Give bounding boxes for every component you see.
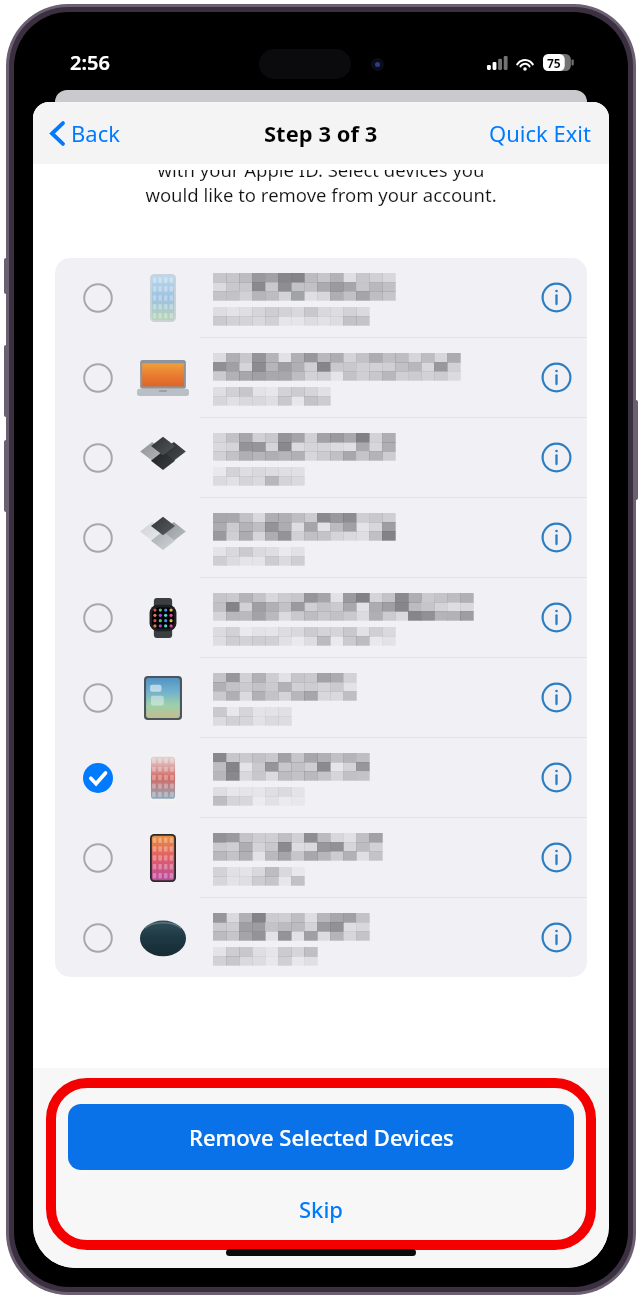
button[interactable]: Device row	[55, 418, 587, 497]
button[interactable]: Device row	[55, 658, 587, 737]
button[interactable]: Remove Selected Devices	[68, 1104, 574, 1170]
button[interactable]: Device row	[55, 578, 587, 657]
button[interactable]: Device row	[55, 818, 587, 897]
button[interactable]: Device row	[55, 498, 587, 577]
staticText: Quick Exit	[489, 118, 591, 148]
staticText: Back	[71, 118, 120, 148]
button[interactable]: More info	[525, 762, 587, 793]
button[interactable]: Quick Exit	[471, 110, 609, 156]
staticText: 75	[547, 55, 561, 71]
button[interactable]: Device row	[55, 738, 587, 817]
button[interactable]: Skip	[259, 1186, 383, 1232]
staticText: Step 3 of 3	[264, 118, 378, 148]
button[interactable]: More info	[525, 522, 587, 553]
button[interactable]: Device row	[55, 898, 587, 977]
button[interactable]: Device row	[55, 258, 587, 337]
staticText: Remove Selected Devices	[189, 1122, 454, 1152]
staticText: 2:56	[70, 49, 110, 76]
button[interactable]: Back	[33, 112, 130, 154]
button[interactable]: Device row	[55, 338, 587, 417]
button[interactable]: More info	[525, 602, 587, 633]
button[interactable]: More info	[525, 442, 587, 473]
button[interactable]: More info	[525, 362, 587, 393]
staticText: Skip	[299, 1194, 343, 1224]
button[interactable]: More info	[525, 842, 587, 873]
button[interactable]: More info	[525, 682, 587, 713]
staticText: with your Apple ID. Select devices you w…	[55, 170, 587, 208]
button[interactable]: More info	[525, 922, 587, 953]
button[interactable]: More info	[525, 282, 587, 313]
